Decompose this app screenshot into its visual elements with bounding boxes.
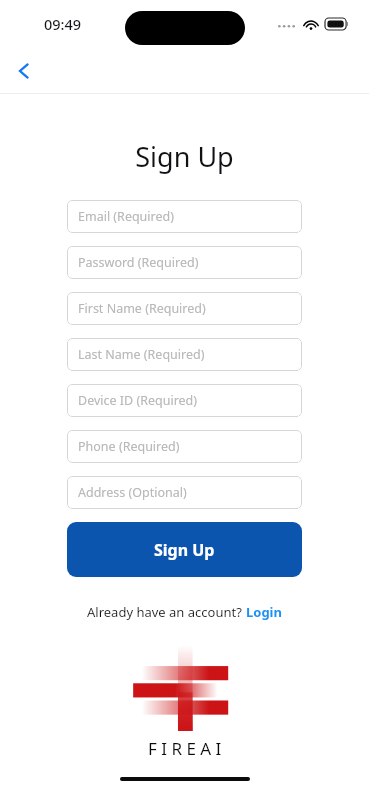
staticText: F I R E A I: [148, 737, 222, 760]
staticText: Last Name (Required): [78, 346, 205, 363]
staticText: 09:49: [44, 14, 82, 34]
button[interactable]: Email (Required): [67, 200, 302, 233]
staticText: Already have an account?: [87, 603, 242, 621]
staticText: Login: [246, 603, 282, 621]
button[interactable]: Login: [246, 603, 282, 621]
button[interactable]: Address (Optional): [67, 476, 302, 509]
staticText: Sign Up: [0, 138, 369, 175]
button[interactable]: Password (Required): [67, 246, 302, 279]
button[interactable]: Sign Up: [67, 522, 302, 577]
staticText: First Name (Required): [78, 300, 206, 317]
staticText: Address (Optional): [78, 484, 187, 501]
staticText: Sign Up: [154, 539, 215, 561]
button[interactable]: Device ID (Required): [67, 384, 302, 417]
button[interactable]: Last Name (Required): [67, 338, 302, 371]
button[interactable]: Phone (Required): [67, 430, 302, 463]
button[interactable]: Back: [4, 51, 44, 91]
staticText: Password (Required): [78, 254, 199, 271]
staticText: Device ID (Required): [78, 392, 198, 409]
staticText: Phone (Required): [78, 438, 180, 455]
button[interactable]: First Name (Required): [67, 292, 302, 325]
staticText: Email (Required): [78, 208, 174, 225]
